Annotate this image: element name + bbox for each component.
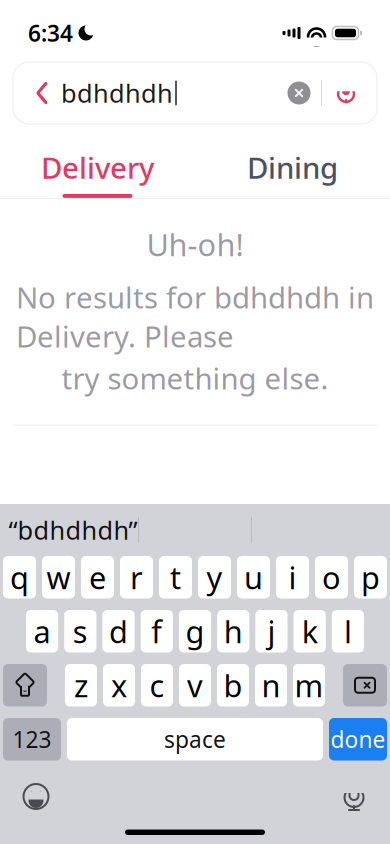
staticText: d bbox=[109, 611, 128, 652]
staticText: x bbox=[111, 665, 127, 706]
staticText: Uh-oh! bbox=[146, 224, 243, 265]
staticText: t bbox=[170, 557, 181, 598]
button[interactable]: Shift bbox=[3, 664, 47, 706]
staticText: u bbox=[244, 557, 263, 598]
button[interactable]: i bbox=[276, 556, 309, 598]
staticText: “bdhdhdh” bbox=[8, 513, 137, 547]
staticText: 123 bbox=[12, 724, 51, 754]
staticText: r bbox=[130, 557, 143, 598]
staticText: Dining bbox=[247, 148, 338, 187]
button[interactable]: j bbox=[255, 610, 287, 652]
staticText: k bbox=[302, 611, 318, 652]
staticText: done bbox=[330, 724, 385, 754]
staticText: e bbox=[89, 557, 106, 598]
button[interactable]: u bbox=[237, 556, 270, 598]
button[interactable]: v bbox=[179, 664, 211, 706]
button[interactable]: Voice search bbox=[327, 71, 365, 115]
button[interactable]: d bbox=[102, 610, 135, 652]
button[interactable]: c bbox=[141, 664, 173, 706]
button[interactable]: g bbox=[179, 610, 211, 652]
button[interactable]: z bbox=[65, 664, 97, 706]
button[interactable]: m bbox=[293, 664, 325, 706]
staticText: p bbox=[361, 557, 380, 598]
staticText: w bbox=[46, 557, 70, 598]
staticText: 6:34 bbox=[28, 18, 73, 48]
staticText: j bbox=[267, 611, 275, 652]
staticText: c bbox=[149, 665, 164, 706]
button[interactable]: Dictation bbox=[332, 776, 376, 816]
button[interactable]: q bbox=[3, 556, 36, 598]
button[interactable]: b bbox=[217, 664, 249, 706]
button[interactable]: f bbox=[141, 610, 173, 652]
button[interactable]: n bbox=[255, 664, 287, 706]
staticText: z bbox=[74, 665, 88, 706]
staticText: y bbox=[206, 557, 222, 598]
staticText: g bbox=[185, 611, 204, 652]
button[interactable]: r bbox=[120, 556, 153, 598]
button[interactable]: l bbox=[332, 610, 364, 652]
button[interactable]: Delete bbox=[343, 664, 387, 706]
staticText: bdhdhdh bbox=[61, 76, 173, 110]
button[interactable]: p bbox=[354, 556, 387, 598]
staticText: h bbox=[224, 611, 243, 652]
button[interactable]: w bbox=[42, 556, 75, 598]
staticText: f bbox=[151, 611, 162, 652]
staticText: space bbox=[164, 724, 226, 754]
button[interactable]: s bbox=[64, 610, 96, 652]
staticText: a bbox=[34, 611, 51, 652]
staticText: v bbox=[187, 665, 203, 706]
button[interactable]: e bbox=[81, 556, 114, 598]
button[interactable]: done bbox=[329, 718, 387, 760]
button[interactable]: space bbox=[67, 718, 323, 760]
button[interactable]: x bbox=[103, 664, 135, 706]
button[interactable]: k bbox=[294, 610, 326, 652]
staticText: l bbox=[344, 611, 352, 652]
button[interactable]: Dining bbox=[195, 136, 390, 198]
button[interactable]: o bbox=[315, 556, 348, 598]
staticText: Delivery bbox=[41, 148, 154, 187]
button[interactable]: a bbox=[26, 610, 58, 652]
staticText: m bbox=[294, 665, 323, 706]
button[interactable]: y bbox=[198, 556, 231, 598]
staticText: s bbox=[73, 611, 88, 652]
button[interactable]: Emoji keyboard bbox=[14, 776, 58, 816]
staticText: try something else. bbox=[61, 359, 328, 398]
staticText: No results for bdhdhdh in Delivery. Plea… bbox=[16, 278, 374, 356]
staticText: q bbox=[10, 557, 29, 598]
button[interactable]: Clear text bbox=[282, 71, 316, 115]
staticText: n bbox=[261, 665, 280, 706]
staticText: i bbox=[288, 557, 296, 598]
button[interactable]: Back bbox=[25, 67, 59, 119]
button[interactable]: h bbox=[217, 610, 249, 652]
button[interactable]: t bbox=[159, 556, 192, 598]
button[interactable]: 123 bbox=[3, 718, 61, 760]
staticText: b bbox=[223, 665, 242, 706]
button[interactable]: Delivery bbox=[0, 136, 195, 198]
staticText: o bbox=[322, 557, 341, 598]
